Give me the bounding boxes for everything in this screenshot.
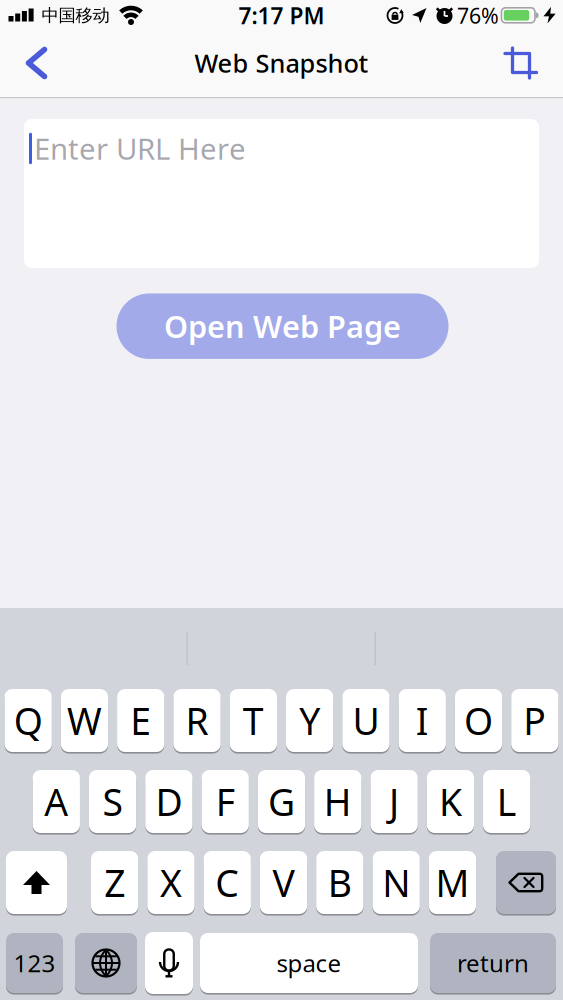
staticText: A [44, 777, 68, 826]
button[interactable]: D [145, 770, 192, 833]
staticText: Q [14, 696, 43, 745]
staticText: R [185, 696, 208, 745]
staticText: Open Web Page [164, 306, 401, 346]
button[interactable]: Q [4, 689, 52, 752]
button[interactable]: P [511, 689, 558, 752]
staticText: X [160, 858, 182, 907]
button[interactable]: U [342, 689, 390, 752]
button[interactable]: A [33, 770, 80, 833]
button[interactable]: T [230, 689, 277, 752]
staticText: C [215, 858, 239, 907]
staticText: U [352, 696, 379, 745]
button[interactable]: B [316, 851, 363, 914]
staticText: L [497, 777, 517, 826]
button[interactable]: L [483, 770, 530, 833]
staticText: J [389, 777, 399, 826]
button[interactable]: N [372, 851, 420, 914]
button[interactable]: X [147, 851, 195, 914]
button[interactable]: Shift [6, 851, 67, 914]
staticText: E [130, 696, 151, 745]
staticText: V [272, 858, 294, 907]
button[interactable]: V [260, 851, 307, 914]
staticText: space [276, 947, 341, 979]
button[interactable]: F [201, 770, 249, 833]
button[interactable]: return [430, 933, 556, 993]
staticText: 76% [457, 1, 499, 30]
button[interactable]: Crop [496, 39, 544, 87]
button[interactable]: M [429, 851, 476, 914]
button[interactable]: space [200, 933, 418, 993]
button[interactable]: E [117, 689, 164, 752]
button[interactable]: H [314, 770, 361, 833]
button[interactable]: C [204, 851, 251, 914]
staticText: K [439, 777, 462, 826]
staticText: Enter URL Here [34, 129, 246, 168]
staticText: D [155, 777, 182, 826]
staticText: Web Snapshot [194, 46, 368, 80]
staticText: O [464, 696, 493, 745]
staticText: 123 [13, 947, 55, 979]
button[interactable]: Back [14, 45, 58, 81]
button[interactable]: Next keyboard [75, 933, 137, 993]
staticText: S [103, 777, 123, 826]
staticText: I [416, 696, 429, 745]
button[interactable]: K [427, 770, 474, 833]
staticText: H [324, 777, 352, 826]
staticText: F [216, 777, 235, 826]
staticText: T [243, 696, 264, 745]
button[interactable]: Enter URL Here [24, 119, 539, 268]
staticText: N [382, 858, 410, 907]
staticText: return [457, 947, 529, 979]
button[interactable]: Delete [496, 851, 556, 914]
button[interactable]: Z [91, 851, 138, 914]
staticText: Z [104, 858, 125, 907]
staticText: P [523, 696, 546, 745]
button[interactable]: G [258, 770, 305, 833]
button[interactable]: S [89, 770, 136, 833]
button[interactable]: W [61, 689, 108, 752]
staticText: 中国移动 [41, 5, 109, 26]
button[interactable]: J [370, 770, 418, 833]
staticText: M [435, 858, 469, 907]
button[interactable]: I [399, 689, 446, 752]
button[interactable]: Dictation [145, 932, 193, 994]
button[interactable]: 123 [6, 933, 63, 993]
staticText: 7:17 PM [238, 0, 324, 30]
button[interactable]: R [173, 689, 221, 752]
button[interactable]: O [455, 689, 502, 752]
button[interactable]: Open Web Page [116, 293, 448, 359]
staticText: B [328, 858, 352, 907]
button[interactable]: Y [286, 689, 333, 752]
staticText: G [268, 777, 295, 826]
staticText: Y [299, 696, 320, 745]
staticText: W [67, 696, 102, 745]
